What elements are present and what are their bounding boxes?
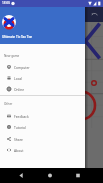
button[interactable]: Online — [0, 83, 85, 94]
button[interactable]: Computer — [0, 61, 85, 72]
staticText: Computer — [14, 65, 30, 69]
staticText: 18:55 — [2, 1, 11, 5]
button[interactable]: Undo — [90, 10, 99, 19]
staticText: Share — [14, 137, 23, 141]
staticText: New game — [4, 54, 20, 58]
button[interactable]: Home — [34, 168, 68, 183]
staticText: Tutorial — [14, 125, 26, 129]
button[interactable]: About — [0, 144, 85, 155]
button[interactable]: Share — [0, 133, 85, 144]
staticText: Ultimate Tic Tac Toe — [2, 35, 33, 39]
button[interactable]: Local — [0, 72, 85, 83]
button[interactable]: Tutorial — [0, 121, 85, 132]
staticText: Feedback — [14, 114, 29, 118]
button[interactable]: Feedback — [0, 110, 85, 121]
button[interactable]: Back — [0, 168, 34, 183]
staticText: Online — [14, 87, 25, 91]
staticText: About — [14, 148, 24, 152]
staticText: Local — [14, 76, 23, 80]
button[interactable]: Recents — [68, 168, 103, 183]
staticText: Other — [4, 102, 13, 106]
